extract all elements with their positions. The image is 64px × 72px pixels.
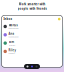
button[interactable]: Riley bbox=[1, 47, 62, 56]
staticText: Inbox bbox=[3, 17, 12, 21]
button[interactable]: Tom bbox=[1, 39, 62, 47]
staticText: Tom bbox=[8, 40, 14, 44]
staticText: Work smarter with bbox=[18, 2, 45, 6]
staticText: Riley bbox=[8, 48, 15, 52]
staticText: Sounds good bbox=[8, 36, 18, 38]
button[interactable]: Marcus bbox=[1, 22, 62, 31]
staticText: people with friends bbox=[17, 7, 46, 10]
staticText: Thanks! bbox=[8, 53, 14, 54]
staticText: Ana bbox=[8, 32, 14, 35]
staticText: On my way bbox=[8, 44, 15, 46]
staticText: Marcus bbox=[8, 23, 17, 27]
staticText: See you soon bbox=[8, 28, 18, 29]
button[interactable]: Ana bbox=[1, 31, 62, 39]
